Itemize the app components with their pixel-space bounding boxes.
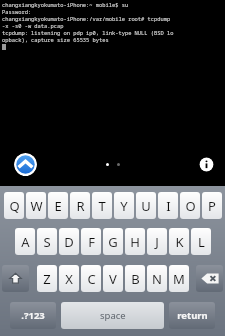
button[interactable]: .?123 (10, 302, 56, 329)
button[interactable]: D (59, 228, 79, 255)
staticText: .?123 (21, 309, 45, 322)
staticText: M (173, 270, 185, 288)
staticText: A (21, 233, 30, 251)
button[interactable]: Scroll up (14, 153, 37, 176)
button[interactable]: Info (199, 157, 214, 172)
button[interactable]: Y (114, 192, 134, 219)
button[interactable]: N (147, 265, 167, 292)
staticText: W (30, 197, 43, 215)
button[interactable]: Shift (2, 265, 29, 292)
staticText: G (108, 233, 118, 251)
button[interactable]: G (103, 228, 123, 255)
staticText: -x -s0 -w data.pcap (2, 22, 64, 29)
button[interactable]: U (136, 192, 156, 219)
button[interactable]: O (180, 192, 200, 219)
staticText: B (131, 270, 140, 288)
staticText: H (130, 233, 140, 251)
staticText: tcpdump: listening on pdp ip0, link-type… (2, 29, 174, 36)
button[interactable]: space (61, 302, 164, 329)
button[interactable]: B (125, 265, 145, 292)
staticText: L (198, 233, 205, 251)
staticText: C (87, 270, 96, 288)
staticText: D (64, 233, 74, 251)
staticText: space (100, 309, 126, 322)
button[interactable]: M (169, 265, 189, 292)
button[interactable]: return (169, 302, 215, 329)
button[interactable]: K (169, 228, 189, 255)
staticText: F (88, 233, 95, 251)
staticText: K (175, 233, 184, 251)
staticText: U (141, 197, 151, 215)
button[interactable]: L (191, 228, 211, 255)
staticText: opback), capture size 65535 bytes (2, 36, 109, 43)
staticText: E (54, 197, 62, 215)
button[interactable]: C (81, 265, 101, 292)
staticText: V (109, 270, 117, 288)
staticText: J (155, 233, 159, 251)
staticText: Password: (2, 8, 32, 15)
staticText: changxiangkyokumato-iPhone:/var/mobile r… (2, 15, 171, 22)
button[interactable]: E (48, 192, 68, 219)
button[interactable]: A (15, 228, 35, 255)
button[interactable]: Z (37, 265, 57, 292)
staticText: T (98, 197, 106, 215)
button[interactable]: W (26, 192, 46, 219)
staticText: Y (120, 197, 128, 215)
button[interactable]: H (125, 228, 145, 255)
staticText: P (208, 197, 216, 215)
staticText: Z (43, 270, 51, 288)
staticText: O (185, 197, 196, 215)
staticText: I (166, 197, 171, 215)
staticText: return (177, 309, 208, 322)
button[interactable]: F (81, 228, 101, 255)
button[interactable]: X (59, 265, 79, 292)
button[interactable]: I (158, 192, 178, 219)
button[interactable]: S (37, 228, 57, 255)
staticText: S (43, 233, 51, 251)
button[interactable]: Q (4, 192, 24, 219)
staticText: R (76, 197, 85, 215)
staticText: Q (9, 197, 20, 215)
button[interactable]: R (70, 192, 90, 219)
button[interactable]: P (202, 192, 222, 219)
staticText: changxiangkyokumato-iPhone:~ mobile$ su (2, 1, 129, 8)
staticText: N (152, 270, 162, 288)
button[interactable]: V (103, 265, 123, 292)
staticText: X (65, 270, 73, 288)
button[interactable]: J (147, 228, 167, 255)
button[interactable]: Backspace (196, 265, 223, 292)
button[interactable]: T (92, 192, 112, 219)
